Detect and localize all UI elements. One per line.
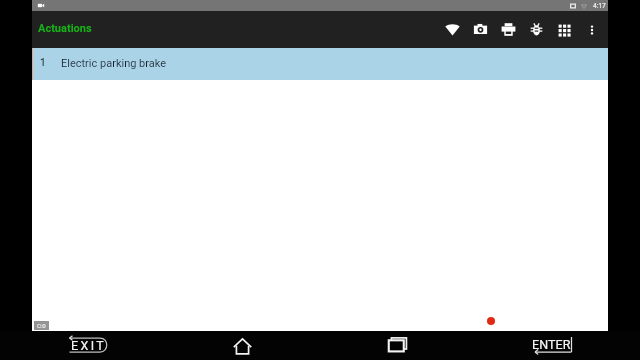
staticText: 1 [40,57,46,69]
staticText: 4:17 [593,2,606,10]
staticText: C:0 [37,322,46,329]
button[interactable]: Wifi [438,11,466,48]
button[interactable]: Home [222,331,262,360]
button[interactable]: EXIT [62,331,114,360]
button[interactable]: Camera [466,11,494,48]
button[interactable]: Recents [377,330,417,359]
button[interactable]: ENTER [526,331,578,360]
button[interactable]: Print [494,11,522,48]
staticText: EXIT [71,338,107,353]
button[interactable]: 1 [32,48,608,80]
staticText: ENTER [532,337,571,352]
staticText: Actuations [38,22,92,35]
button[interactable]: Debug [522,11,550,48]
button[interactable]: Apps [550,11,578,48]
button[interactable]: More options [578,11,606,48]
staticText: Electric parking brake [61,57,167,70]
